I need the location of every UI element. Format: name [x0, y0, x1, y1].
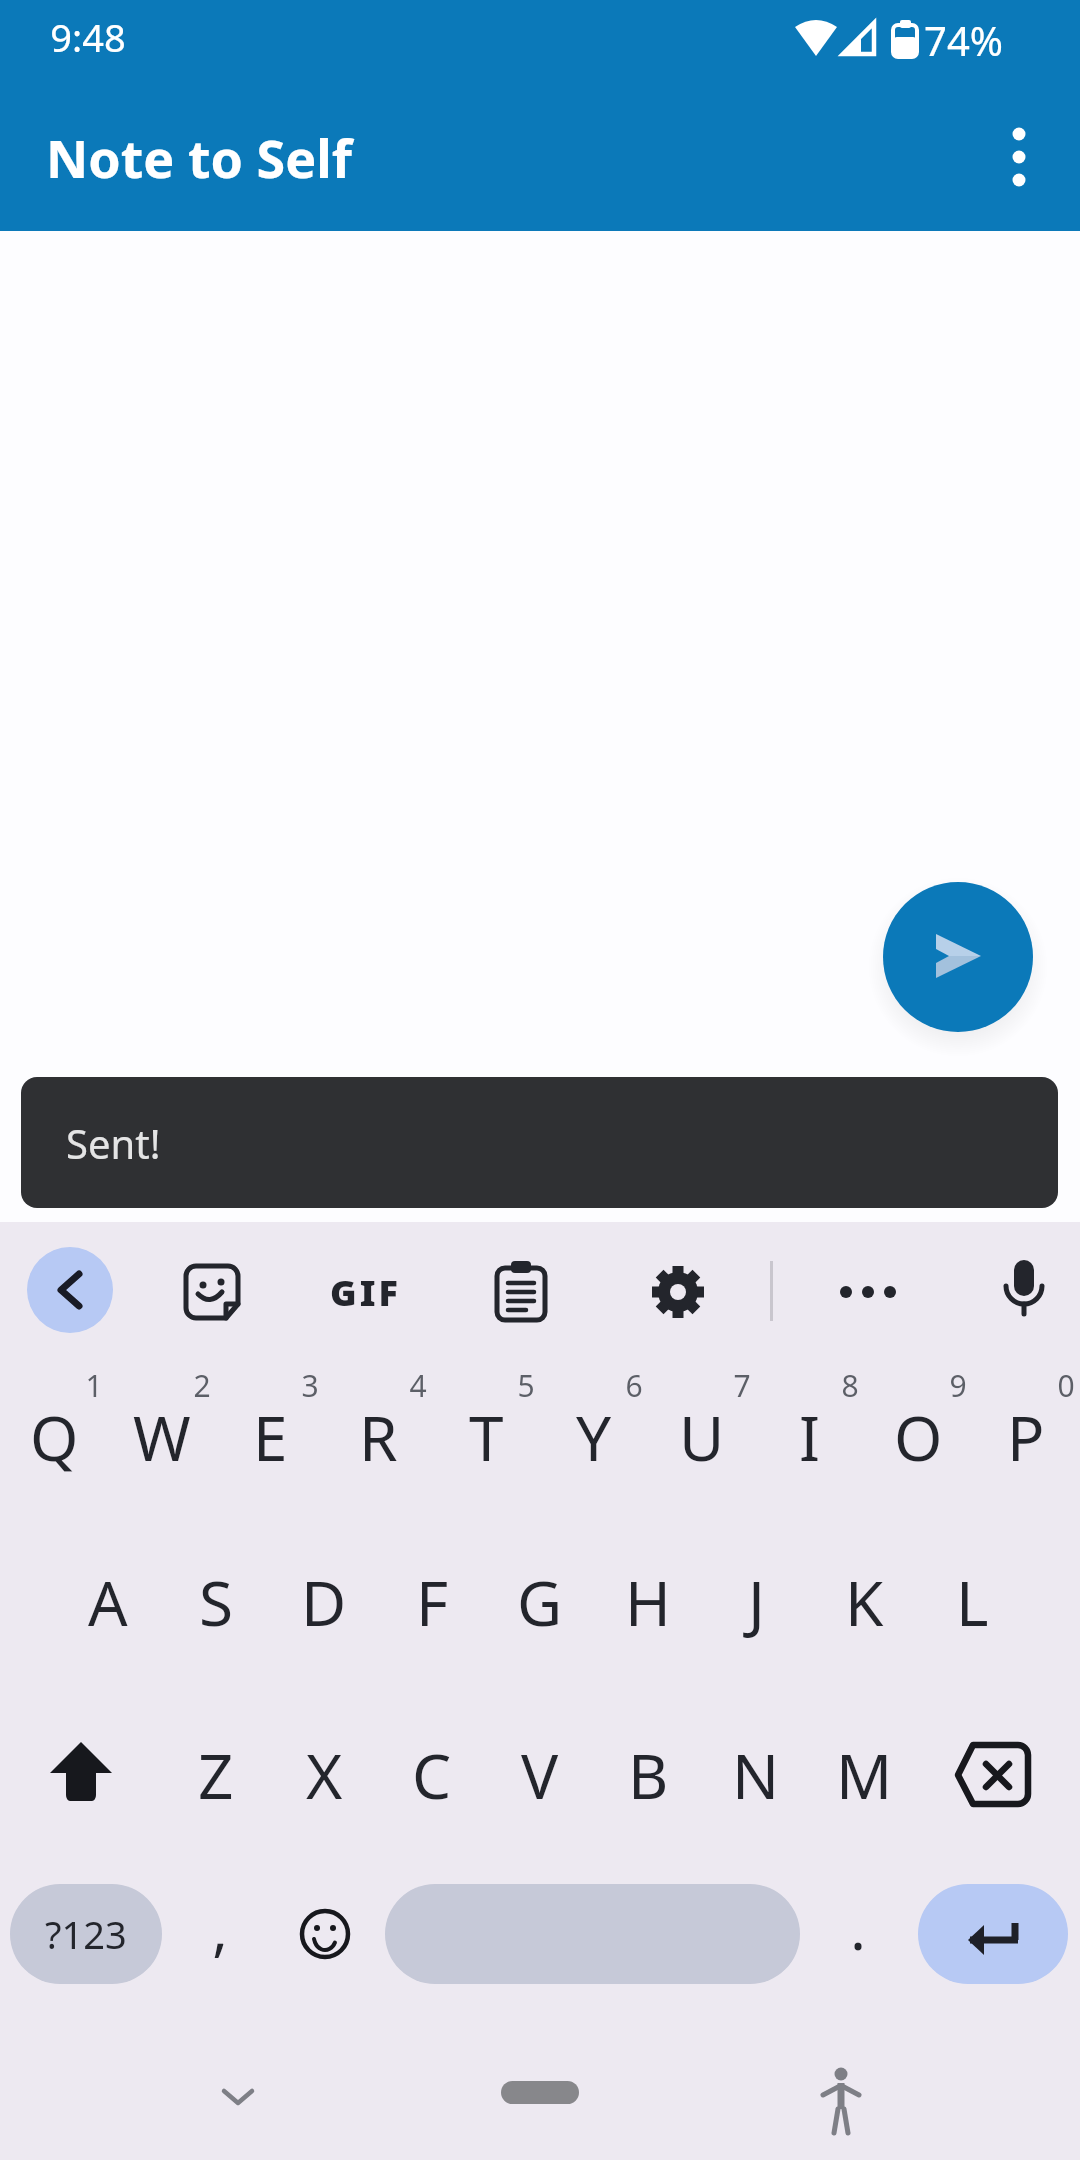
- button[interactable]: [918, 1884, 1068, 1984]
- staticText: 9:48: [50, 11, 126, 63]
- staticText: K: [845, 1560, 884, 1644]
- staticText: F: [416, 1560, 449, 1644]
- staticText: GIF: [330, 1268, 401, 1317]
- staticText: 4: [409, 1365, 427, 1406]
- staticText: 1: [85, 1365, 103, 1406]
- button[interactable]: S: [162, 1522, 270, 1682]
- staticText: Z: [198, 1733, 234, 1817]
- staticText: X: [306, 1733, 343, 1817]
- staticText: N: [732, 1733, 780, 1817]
- staticText: V: [521, 1733, 559, 1817]
- staticText: H: [625, 1560, 671, 1644]
- staticText: W: [133, 1395, 191, 1479]
- staticText: M: [836, 1733, 893, 1817]
- button[interactable]: D: [270, 1522, 378, 1682]
- staticText: E: [253, 1395, 288, 1479]
- staticText: 2: [193, 1365, 211, 1406]
- button[interactable]: [27, 1247, 113, 1333]
- staticText: B: [628, 1733, 669, 1817]
- staticText: 0: [1057, 1365, 1075, 1406]
- staticText: O: [894, 1395, 943, 1479]
- button[interactable]: [385, 1884, 800, 1984]
- button[interactable]: H: [594, 1522, 702, 1682]
- staticText: Q: [30, 1395, 79, 1479]
- staticText: A: [88, 1560, 128, 1644]
- button[interactable]: T: [432, 1357, 540, 1517]
- button[interactable]: K: [810, 1522, 918, 1682]
- button[interactable]: N: [702, 1695, 810, 1855]
- staticText: J: [748, 1560, 765, 1644]
- button[interactable]: V: [486, 1695, 594, 1855]
- button[interactable]: I: [756, 1357, 864, 1517]
- button[interactable]: [801, 2053, 881, 2133]
- button[interactable]: [481, 1252, 561, 1332]
- staticText: 8: [841, 1365, 859, 1406]
- button[interactable]: ?123: [10, 1884, 162, 1984]
- staticText: S: [199, 1560, 234, 1644]
- button[interactable]: J: [702, 1522, 810, 1682]
- button[interactable]: [883, 882, 1033, 1032]
- staticText: .: [850, 1888, 866, 1967]
- button[interactable]: R: [324, 1357, 432, 1517]
- button[interactable]: C: [378, 1695, 486, 1855]
- button[interactable]: P: [972, 1357, 1080, 1517]
- button[interactable]: GIF: [300, 1252, 430, 1332]
- button[interactable]: L: [918, 1522, 1026, 1682]
- button[interactable]: [939, 1715, 1059, 1835]
- staticText: U: [679, 1395, 725, 1479]
- staticText: 7: [733, 1365, 751, 1406]
- button[interactable]: Y: [540, 1357, 648, 1517]
- button[interactable]: [638, 1252, 718, 1332]
- button[interactable]: [198, 2053, 278, 2133]
- staticText: ?123: [45, 1908, 127, 1960]
- button[interactable]: [984, 1252, 1064, 1332]
- staticText: Note to Self: [46, 122, 352, 193]
- staticText: P: [1007, 1395, 1045, 1479]
- button[interactable]: [828, 1252, 908, 1332]
- button[interactable]: F: [378, 1522, 486, 1682]
- button[interactable]: [285, 1894, 365, 1974]
- button[interactable]: U: [648, 1357, 756, 1517]
- staticText: 3: [301, 1365, 319, 1406]
- staticText: ,: [212, 1888, 228, 1967]
- button[interactable]: E: [216, 1357, 324, 1517]
- staticText: 9: [949, 1365, 967, 1406]
- button[interactable]: Q: [0, 1357, 108, 1517]
- staticText: T: [469, 1395, 504, 1479]
- button[interactable]: Z: [162, 1695, 270, 1855]
- staticText: Y: [576, 1395, 612, 1479]
- button[interactable]: [501, 2081, 579, 2104]
- button[interactable]: A: [54, 1522, 162, 1682]
- button[interactable]: B: [594, 1695, 702, 1855]
- button[interactable]: [985, 110, 1055, 205]
- staticText: Sent!: [66, 1116, 161, 1170]
- staticText: 74%: [924, 13, 1003, 67]
- staticText: G: [517, 1560, 563, 1644]
- button[interactable]: X: [270, 1695, 378, 1855]
- button[interactable]: [21, 1715, 141, 1835]
- staticText: 6: [625, 1365, 643, 1406]
- button[interactable]: O: [864, 1357, 972, 1517]
- button[interactable]: M: [810, 1695, 918, 1855]
- button[interactable]: Note to Self: [0, 84, 1080, 231]
- staticText: I: [799, 1395, 821, 1479]
- button[interactable]: G: [486, 1522, 594, 1682]
- button[interactable]: [172, 1252, 252, 1332]
- staticText: C: [412, 1733, 452, 1817]
- button[interactable]: W: [108, 1357, 216, 1517]
- staticText: 5: [517, 1365, 535, 1406]
- staticText: L: [956, 1560, 989, 1644]
- staticText: D: [301, 1560, 347, 1644]
- staticText: R: [359, 1395, 398, 1479]
